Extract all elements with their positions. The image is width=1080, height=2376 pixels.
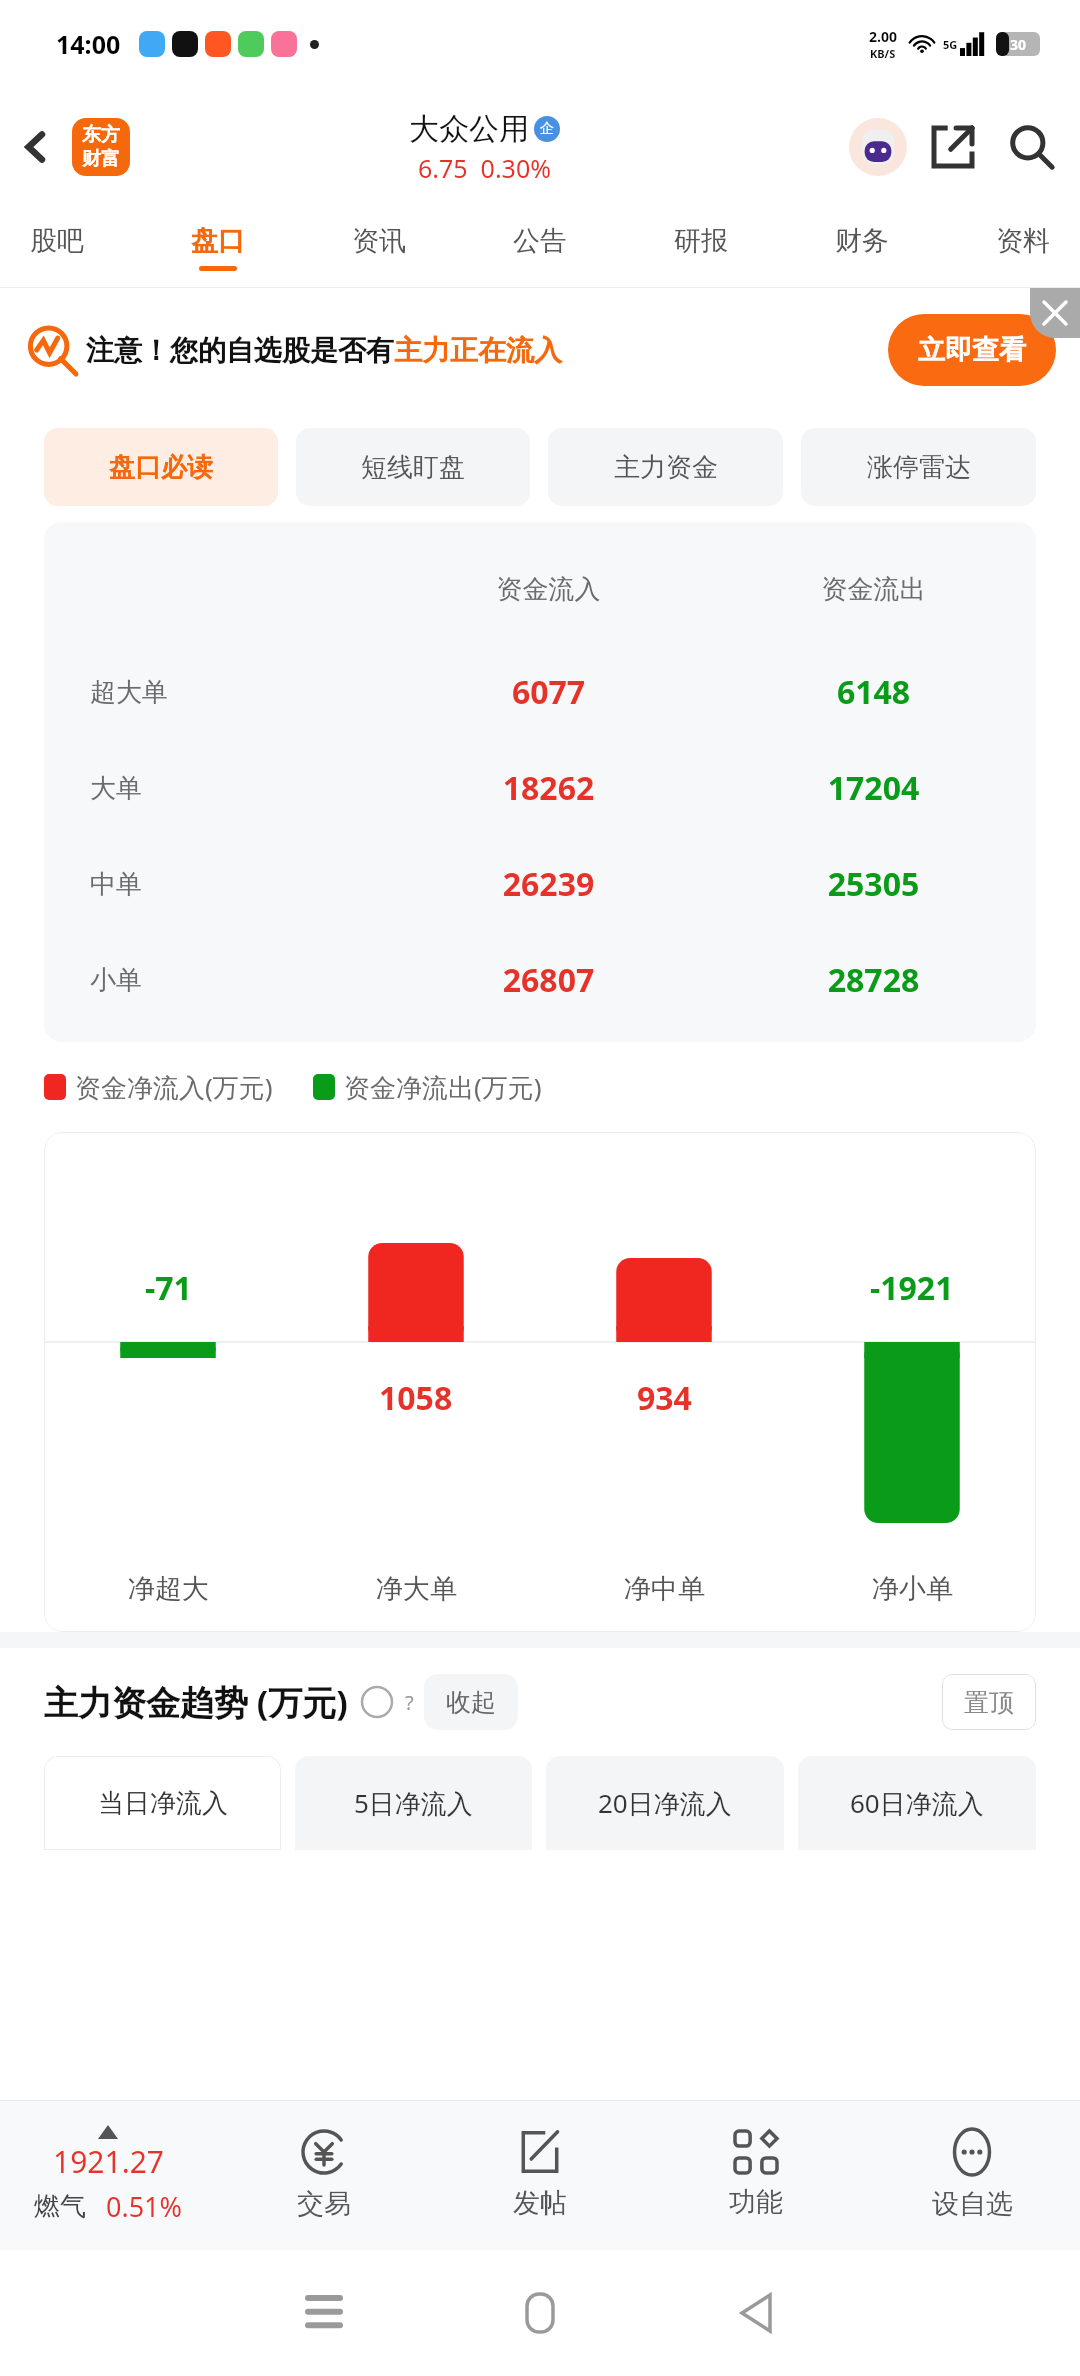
- staticText: 东方: [82, 123, 120, 147]
- button[interactable]: Share: [916, 110, 990, 184]
- button[interactable]: Home: [432, 2294, 648, 2332]
- staticText: 涨停雷达: [867, 451, 971, 484]
- staticText: 中单: [90, 868, 386, 901]
- staticText: 25305: [711, 862, 1036, 906]
- staticText: 设自选: [932, 2187, 1013, 2221]
- staticText: 1058: [379, 1376, 453, 1420]
- staticText: 30: [1010, 35, 1027, 54]
- staticText: 主力资金: [614, 451, 718, 484]
- staticText: 研报: [674, 224, 728, 258]
- button[interactable]: 交易: [216, 2100, 432, 2250]
- staticText: 资金流出: [711, 573, 1036, 606]
- staticText: 资金流入: [386, 573, 711, 606]
- staticText: -71: [145, 1266, 192, 1310]
- button[interactable]: 1921.27: [0, 2125, 216, 2225]
- staticText: 14:00: [56, 27, 121, 61]
- staticText: 功能: [729, 2185, 783, 2219]
- button[interactable]: Recents: [216, 2298, 432, 2328]
- staticText: 0.51%: [106, 2188, 183, 2225]
- staticText: 发帖: [513, 2186, 567, 2220]
- staticText: 净小单: [872, 1572, 953, 1606]
- button[interactable]: Search: [990, 105, 1074, 189]
- staticText: 资料: [996, 224, 1050, 258]
- staticText: 主力资金趋势 (万元): [44, 1679, 348, 1725]
- button[interactable]: 股吧: [30, 224, 84, 271]
- button[interactable]: 功能: [648, 2100, 864, 2250]
- staticText: 18262: [386, 766, 711, 810]
- button[interactable]: 盘口: [191, 224, 245, 271]
- staticText: 主力正在流入: [394, 333, 562, 368]
- staticText: 1921.27: [53, 2141, 164, 2182]
- button[interactable]: 当日净流入: [44, 1756, 281, 1850]
- staticText: 注意！您的自选股是否有: [86, 333, 394, 368]
- button[interactable]: 资讯: [352, 224, 406, 271]
- staticText: 5日净流入: [354, 1785, 473, 1821]
- button[interactable]: 5日净流入: [295, 1756, 532, 1850]
- staticText: 净大单: [376, 1572, 457, 1606]
- button[interactable]: 置顶: [964, 1674, 1014, 1730]
- staticText: 盘口必读: [109, 451, 213, 484]
- staticText: 26239: [386, 862, 711, 906]
- staticText: 资讯: [352, 224, 406, 258]
- button[interactable]: Close: [1030, 288, 1080, 338]
- staticText: 净中单: [624, 1572, 705, 1606]
- staticText: -1921: [870, 1266, 954, 1310]
- button[interactable]: 短线盯盘: [296, 428, 530, 506]
- staticText: 收起: [446, 1687, 496, 1718]
- button[interactable]: 60日净流入: [798, 1756, 1036, 1850]
- button[interactable]: 资料: [996, 224, 1050, 271]
- staticText: 5G: [943, 37, 958, 52]
- button[interactable]: 帮助: [360, 1685, 394, 1719]
- staticText: ?: [405, 1689, 414, 1711]
- button[interactable]: 财务: [835, 224, 889, 271]
- staticText: 立即查看: [918, 333, 1026, 367]
- staticText: 股吧: [30, 224, 84, 258]
- staticText: 企: [540, 120, 554, 138]
- staticText: 燃气: [34, 2190, 86, 2223]
- button[interactable]: 发帖: [432, 2100, 648, 2250]
- staticText: 交易: [297, 2187, 351, 2221]
- button[interactable]: 研报: [674, 224, 728, 271]
- staticText: 6.75 0.30%: [418, 151, 551, 185]
- staticText: 大众公用: [409, 110, 529, 148]
- staticText: 大单: [90, 772, 386, 805]
- staticText: 2.00: [869, 27, 897, 46]
- button[interactable]: 涨停雷达: [801, 428, 1036, 506]
- button[interactable]: 立即查看: [918, 314, 1026, 386]
- staticText: 财富: [82, 147, 120, 171]
- staticText: 26807: [386, 958, 711, 1002]
- staticText: 净超大: [128, 1572, 209, 1606]
- staticText: 超大单: [90, 676, 386, 709]
- staticText: 当日净流入: [98, 1787, 228, 1820]
- button[interactable]: 东方财富: [72, 118, 130, 176]
- staticText: 934: [637, 1376, 692, 1420]
- staticText: KB/S: [870, 46, 896, 61]
- button[interactable]: 盘口必读: [44, 428, 278, 506]
- button[interactable]: 公告: [513, 224, 567, 271]
- button[interactable]: 主力资金: [548, 428, 783, 506]
- button[interactable]: AI 助手: [840, 109, 916, 185]
- staticText: 财务: [835, 224, 889, 258]
- staticText: 短线盯盘: [361, 451, 465, 484]
- staticText: 60日净流入: [850, 1785, 984, 1821]
- staticText: 小单: [90, 964, 386, 997]
- button[interactable]: Back: [0, 111, 72, 183]
- staticText: 28728: [711, 958, 1036, 1002]
- staticText: 资金净流入(万元): [75, 1069, 273, 1105]
- button[interactable]: 20日净流入: [546, 1756, 784, 1850]
- staticText: 置顶: [964, 1687, 1014, 1718]
- button[interactable]: 收起: [446, 1674, 496, 1730]
- staticText: 盘口: [191, 224, 245, 258]
- staticText: 公告: [513, 224, 567, 258]
- staticText: 17204: [711, 766, 1036, 810]
- staticText: 20日净流入: [598, 1785, 732, 1821]
- staticText: 6148: [711, 670, 1036, 714]
- button[interactable]: Back: [648, 2295, 864, 2331]
- button[interactable]: 设自选: [864, 2100, 1080, 2250]
- button[interactable]: 注意！您的自选股是否有: [0, 288, 1080, 412]
- staticText: 资金净流出(万元): [344, 1069, 542, 1105]
- staticText: 6077: [386, 670, 711, 714]
